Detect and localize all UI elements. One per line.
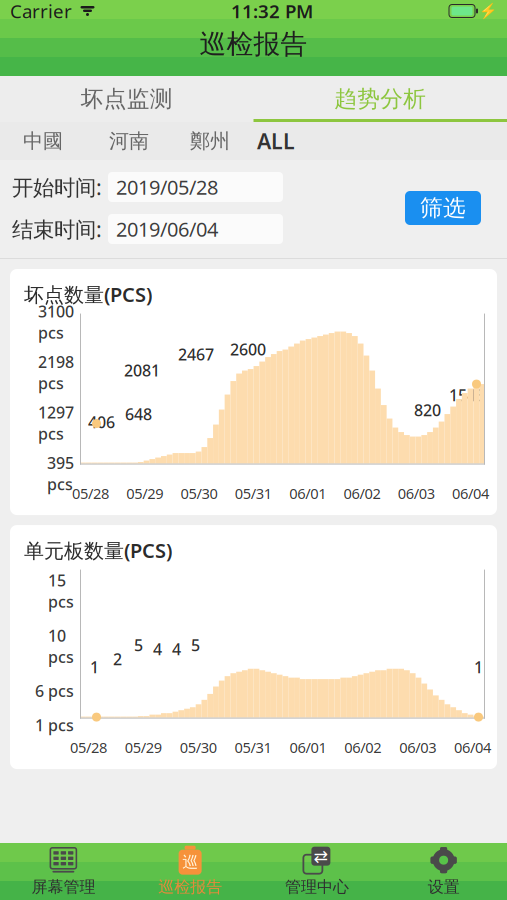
staticText: 06/03: [398, 484, 435, 503]
staticText: 2: [113, 648, 122, 669]
staticText: 06/01: [289, 484, 326, 503]
staticText: 11:32 PM: [231, 0, 313, 23]
staticText: 05/28: [70, 738, 107, 757]
staticText: 1: [90, 656, 99, 677]
staticText: 结束时间:: [12, 215, 102, 243]
button[interactable]: 巡: [127, 844, 254, 899]
staticText: 单元板数量(PCS): [24, 537, 172, 564]
staticText: 05/30: [180, 738, 217, 757]
staticText: 05/28: [72, 484, 109, 503]
button[interactable]: 设置: [380, 844, 507, 899]
staticText: 05/29: [126, 484, 163, 503]
staticText: 巡检报告: [158, 877, 222, 897]
staticText: ALL: [257, 127, 295, 155]
staticText: 648: [125, 403, 152, 424]
button[interactable]: 筛选: [405, 191, 481, 225]
staticText: 05/31: [235, 738, 272, 757]
staticText: 坏点监测: [81, 85, 173, 113]
staticText: 06/02: [343, 484, 380, 503]
staticText: 395 pcs: [47, 452, 74, 495]
staticText: 1: [474, 656, 483, 677]
button[interactable]: 河南: [86, 122, 172, 160]
staticText: 中國: [23, 129, 63, 153]
staticText: 2600: [230, 339, 266, 360]
staticText: 1297 pcs: [38, 402, 74, 444]
staticText: Carrier: [10, 0, 72, 23]
staticText: 2198 pcs: [38, 351, 74, 394]
button[interactable]: 屏幕管理: [0, 844, 127, 899]
staticText: 06/04: [454, 738, 491, 757]
staticText: 3100 pcs: [38, 301, 74, 343]
button[interactable]: 2019/06/04: [108, 214, 283, 244]
button[interactable]: ALL: [248, 122, 304, 160]
staticText: 巡检报告: [199, 28, 307, 60]
staticText: 2081: [124, 360, 160, 381]
staticText: 10 pcs: [48, 625, 74, 667]
staticText: 管理中心: [285, 877, 349, 897]
staticText: 15 pcs: [48, 570, 74, 612]
staticText: 4: [172, 638, 181, 659]
staticText: 屏幕管理: [31, 877, 95, 897]
staticText: 坏点数量(PCS): [24, 281, 152, 308]
button[interactable]: 2019/05/28: [108, 172, 283, 202]
staticText: 5: [134, 634, 143, 655]
staticText: 2019/05/28: [116, 174, 218, 200]
staticText: 05/30: [181, 484, 218, 503]
staticText: 06/03: [399, 738, 436, 757]
staticText: 05/31: [235, 484, 272, 503]
button[interactable]: 坏点监测: [0, 76, 253, 122]
staticText: 1 pcs: [35, 714, 74, 735]
staticText: 820: [414, 399, 441, 420]
staticText: ⇄: [313, 846, 328, 866]
staticText: 406: [88, 411, 115, 432]
staticText: 4: [153, 638, 162, 659]
staticText: 设置: [428, 877, 460, 897]
staticText: 2467: [178, 344, 214, 365]
staticText: ⚡: [479, 3, 497, 19]
staticText: 筛选: [420, 194, 466, 222]
staticText: 6 pcs: [35, 680, 74, 701]
staticText: 1545: [449, 384, 485, 405]
staticText: 开始时间:: [12, 173, 102, 201]
button[interactable]: 鄭州: [172, 122, 248, 160]
staticText: 06/01: [289, 738, 326, 757]
staticText: 巡: [182, 852, 198, 872]
button[interactable]: 趋势分析: [253, 76, 507, 122]
button[interactable]: ⇄: [253, 844, 380, 899]
button[interactable]: 中國: [0, 122, 86, 160]
staticText: 2019/06/04: [116, 216, 218, 242]
staticText: 05/29: [125, 738, 162, 757]
staticText: 06/02: [344, 738, 381, 757]
staticText: 06/04: [452, 484, 489, 503]
staticText: 趋势分析: [334, 85, 426, 113]
staticText: 鄭州: [190, 129, 230, 153]
staticText: 河南: [109, 129, 149, 153]
staticText: 5: [191, 634, 200, 655]
